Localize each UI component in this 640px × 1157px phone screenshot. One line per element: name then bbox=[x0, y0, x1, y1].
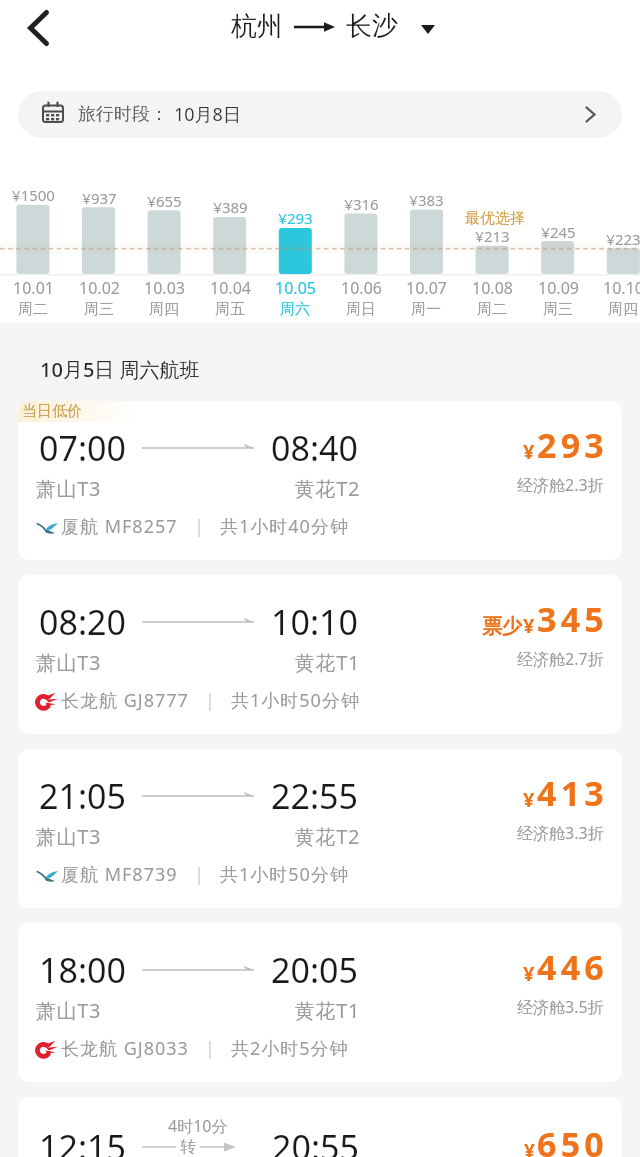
staticText: ¥1500 bbox=[12, 185, 55, 205]
staticText: ¥223 bbox=[606, 229, 640, 249]
staticText: 周一 bbox=[411, 300, 441, 319]
staticText: 最优选择 bbox=[465, 209, 525, 228]
staticText: ¥316 bbox=[344, 194, 379, 214]
staticText: 293 bbox=[537, 422, 608, 468]
staticText: 18:00 bbox=[39, 947, 126, 993]
staticText: 650 bbox=[537, 1121, 608, 1157]
button[interactable]: 旅行时段： bbox=[18, 91, 622, 138]
staticText: ¥655 bbox=[147, 191, 182, 211]
staticText: 萧山T3 bbox=[36, 475, 101, 502]
staticText: 周六 bbox=[280, 300, 310, 319]
staticText: ¥293 bbox=[278, 208, 313, 228]
staticText: 10.03 bbox=[144, 277, 185, 299]
staticText: 黄花T1 bbox=[295, 997, 360, 1024]
staticText: 共1小时50分钟 bbox=[220, 862, 349, 887]
staticText: 345 bbox=[537, 596, 608, 642]
staticText: 长沙 bbox=[346, 10, 398, 43]
button[interactable]: 08:20 bbox=[18, 575, 622, 734]
staticText: 长龙航 GJ8033 bbox=[61, 1036, 189, 1061]
staticText: 经济舱2.3折 bbox=[517, 474, 604, 496]
staticText: 萧山T3 bbox=[36, 823, 101, 850]
staticText: ¥383 bbox=[409, 190, 444, 210]
staticText: 周五 bbox=[215, 300, 245, 319]
staticText: ¥ bbox=[523, 612, 535, 639]
staticText: 21:05 bbox=[39, 773, 126, 819]
button[interactable]: Switch route bbox=[408, 9, 448, 49]
staticText: 黄花T1 bbox=[295, 649, 360, 676]
staticText: | bbox=[205, 1036, 215, 1061]
staticText: 周三 bbox=[84, 300, 114, 319]
staticText: 10.10 bbox=[603, 277, 640, 299]
staticText: ¥213 bbox=[475, 226, 510, 246]
staticText: 周四 bbox=[608, 300, 638, 319]
button[interactable]: 12:15 bbox=[18, 1097, 622, 1157]
staticText: 经济舱3.5折 bbox=[517, 996, 604, 1018]
staticText: 经济舱3.3折 bbox=[517, 822, 604, 844]
staticText: ¥245 bbox=[541, 222, 576, 242]
button[interactable]: 杭州 bbox=[231, 10, 398, 43]
staticText: 10.07 bbox=[406, 277, 447, 299]
staticText: 旅行时段： bbox=[78, 103, 168, 126]
staticText: 黄花T2 bbox=[295, 475, 360, 502]
staticText: 10.01 bbox=[13, 277, 54, 299]
button[interactable]: 当日低价 bbox=[18, 401, 622, 560]
staticText: 共2小时5分钟 bbox=[231, 1036, 349, 1061]
staticText: ¥ bbox=[524, 1138, 535, 1157]
staticText: 周三 bbox=[543, 300, 573, 319]
staticText: 12:15 bbox=[39, 1124, 126, 1157]
staticText: 10.04 bbox=[210, 277, 251, 299]
staticText: 周二 bbox=[477, 300, 507, 319]
staticText: 413 bbox=[537, 770, 608, 816]
staticText: 萧山T3 bbox=[36, 997, 101, 1024]
staticText: 10:10 bbox=[271, 599, 358, 645]
staticText: 10.08 bbox=[472, 277, 513, 299]
staticText: 22:55 bbox=[271, 773, 358, 819]
staticText: 446 bbox=[537, 944, 608, 990]
staticText: 经济舱2.7折 bbox=[517, 648, 604, 670]
staticText: 当日低价 bbox=[22, 402, 82, 421]
button[interactable]: 18:00 bbox=[18, 923, 622, 1082]
staticText: 10.02 bbox=[79, 277, 120, 299]
staticText: 杭州 bbox=[231, 10, 283, 43]
staticText: ¥ bbox=[523, 438, 535, 465]
staticText: ¥937 bbox=[82, 188, 117, 208]
staticText: 共1小时40分钟 bbox=[220, 514, 349, 539]
staticText: 长龙航 GJ8777 bbox=[61, 688, 189, 713]
staticText: 厦航 MF8739 bbox=[61, 862, 178, 887]
staticText: | bbox=[194, 514, 204, 539]
staticText: 周二 bbox=[18, 300, 48, 319]
button[interactable]: 21:05 bbox=[18, 749, 622, 908]
staticText: 20:05 bbox=[271, 947, 358, 993]
staticText: 08:40 bbox=[271, 425, 358, 471]
staticText: ¥389 bbox=[213, 197, 248, 217]
staticText: 10.05 bbox=[275, 277, 316, 299]
staticText: | bbox=[205, 688, 215, 713]
staticText: 转 bbox=[180, 1137, 196, 1157]
staticText: 萧山T3 bbox=[36, 649, 101, 676]
staticText: 厦航 MF8257 bbox=[61, 514, 178, 539]
button[interactable]: Back bbox=[14, 4, 62, 52]
staticText: 20:55 bbox=[272, 1124, 359, 1157]
staticText: 10月5日 周六航班 bbox=[40, 356, 200, 383]
staticText: 07:00 bbox=[39, 425, 126, 471]
staticText: 周日 bbox=[346, 300, 376, 319]
staticText: 10月8日 bbox=[174, 102, 241, 127]
staticText: ¥ bbox=[523, 786, 535, 813]
staticText: 10.09 bbox=[538, 277, 579, 299]
staticText: 10.06 bbox=[341, 277, 382, 299]
staticText: ¥ bbox=[523, 960, 535, 987]
staticText: 票少 bbox=[482, 614, 522, 639]
staticText: | bbox=[194, 862, 204, 887]
staticText: 周四 bbox=[149, 300, 179, 319]
staticText: 08:20 bbox=[39, 599, 126, 645]
staticText: 黄花T2 bbox=[295, 823, 360, 850]
staticText: 4时10分 bbox=[168, 1115, 228, 1137]
staticText: 共1小时50分钟 bbox=[231, 688, 360, 713]
